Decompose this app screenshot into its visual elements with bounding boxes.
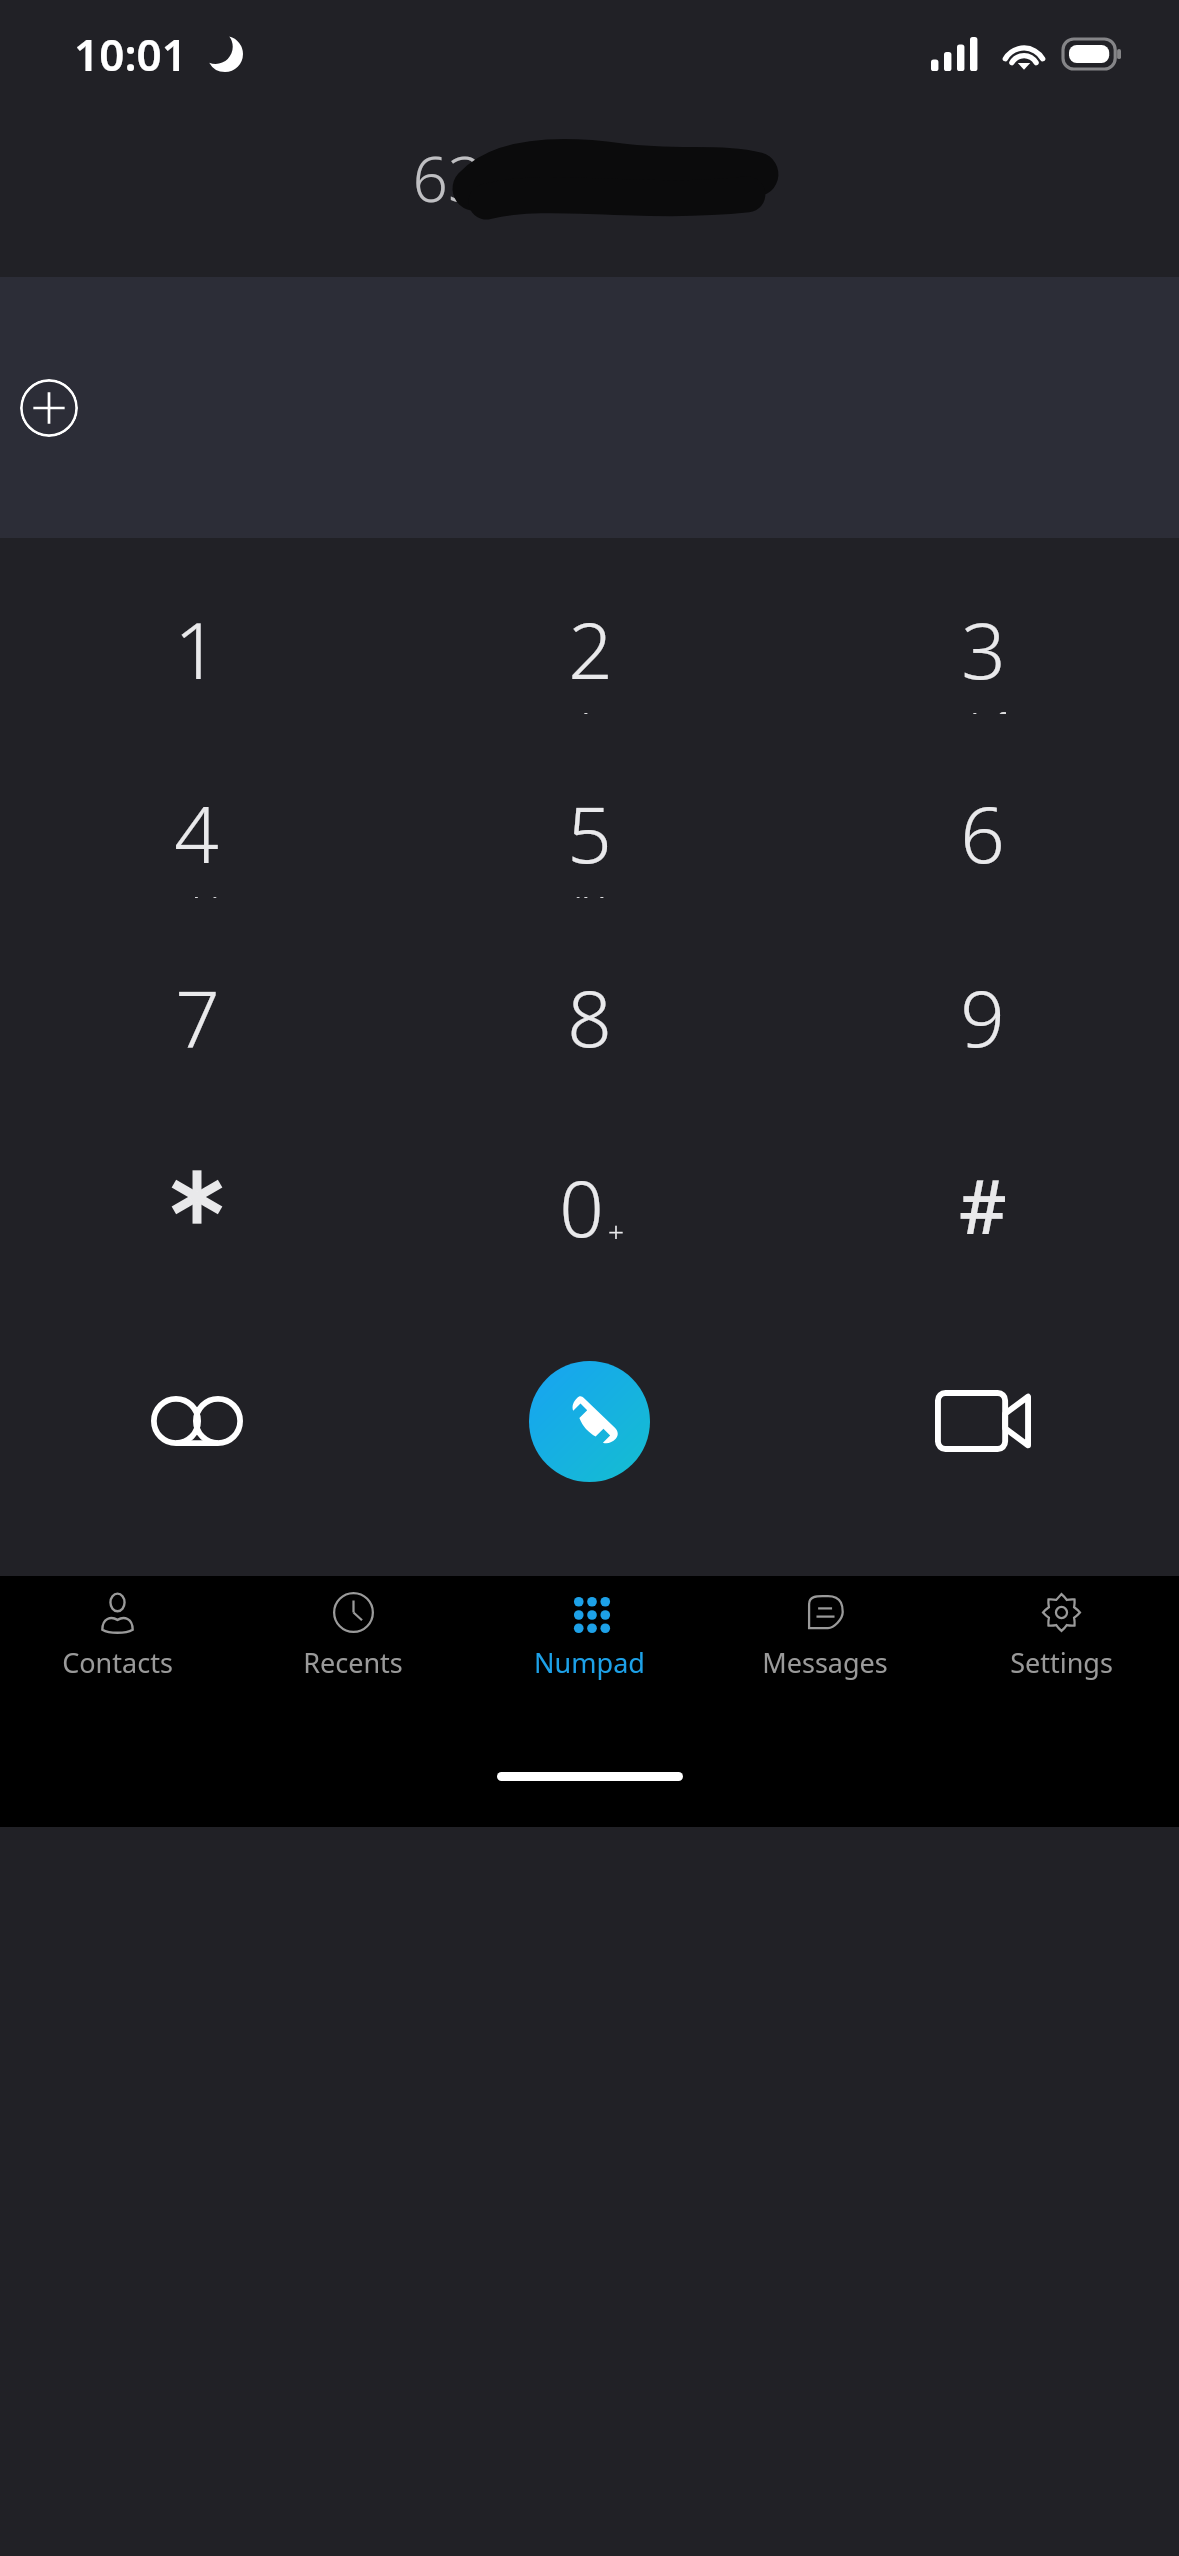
button[interactable]: 8 [393,964,786,1082]
staticText: 10:01 [74,24,187,84]
staticText: 4 [174,780,219,886]
staticText: 1 [174,596,219,702]
staticText: 9 [960,964,1005,1070]
staticText: Contacts [62,1644,173,1681]
staticText: def [960,704,1006,714]
staticText: 0 [559,1154,604,1260]
button[interactable]: 1 [0,596,393,714]
button[interactable]: Messages [707,1576,943,1741]
button[interactable]: Add number [20,379,78,437]
button[interactable]: 9 [786,964,1179,1082]
staticText: ghi [174,888,219,898]
button[interactable]: 6 [786,780,1179,898]
button[interactable]: Contacts [0,1576,235,1741]
button[interactable]: Call [529,1361,650,1482]
button[interactable]: 7 [0,964,393,1082]
button[interactable]: Settings [943,1576,1179,1741]
staticText: abc [565,704,615,714]
staticText: 6390350093 [412,136,767,220]
staticText: Recents [303,1644,403,1681]
staticText: + [608,1212,624,1250]
button[interactable]: 3 [786,596,1179,714]
staticText: 7 [175,964,220,1070]
staticText: 3 [961,596,1006,702]
staticText: Settings [1010,1644,1113,1681]
staticText: 5 [567,780,612,886]
button[interactable]: Recents [235,1576,471,1741]
button[interactable]: 0 [393,1148,786,1266]
staticText: # [959,1155,1007,1256]
button[interactable]: # [786,1148,1179,1266]
button[interactable]: 4 [0,780,393,898]
staticText: Messages [762,1644,888,1681]
button[interactable]: 5 [393,780,786,898]
staticText: 6 [960,780,1005,886]
staticText: Numpad [534,1644,645,1681]
staticText: 2 [568,596,613,702]
button[interactable]: Voicemail [0,1346,393,1496]
staticText: 8 [567,964,612,1070]
button[interactable] [0,1148,393,1266]
staticText: jkl [574,888,606,898]
button[interactable]: 2 [393,596,786,714]
button[interactable]: Numpad [471,1576,707,1741]
button[interactable]: Video call [786,1346,1179,1496]
